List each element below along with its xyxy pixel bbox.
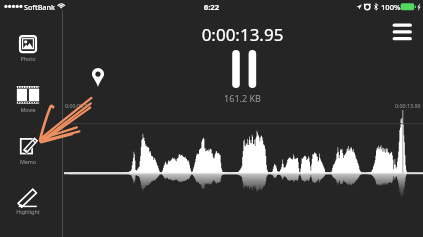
staticText: SoftBank (24, 2, 56, 12)
button[interactable]: Movie (2, 80, 56, 110)
staticText: 0:00:00.00 (65, 102, 91, 109)
staticText: 0:00:13.90 (395, 102, 421, 109)
button[interactable]: Photo (2, 29, 56, 59)
staticText: Highlight (2, 208, 54, 215)
staticText: Movie (2, 106, 54, 113)
staticText: 161.2 KB (62, 92, 423, 104)
staticText: Photo (2, 55, 54, 62)
staticText: 0:00:13.95 (62, 23, 423, 46)
button[interactable]: Highlight (2, 184, 56, 214)
button[interactable]: Menu (388, 19, 416, 45)
staticText: 6:22 (0, 2, 423, 13)
button[interactable]: Pause (226, 46, 260, 92)
staticText: 100% (381, 2, 401, 12)
button[interactable]: Memo (2, 132, 56, 162)
staticText: Memo (2, 158, 54, 165)
